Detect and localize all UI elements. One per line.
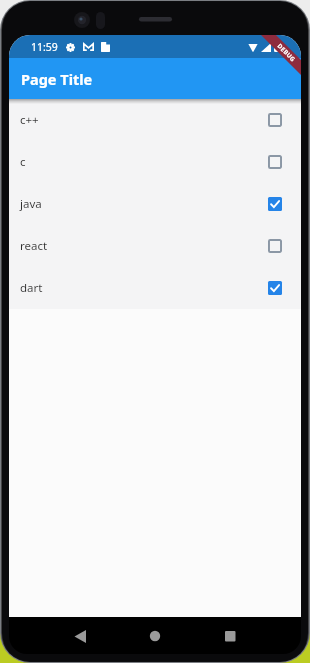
button[interactable]: Home [118, 617, 193, 645]
staticText: java [20, 196, 42, 212]
staticText: Page Title [21, 69, 93, 89]
staticText: 11:59 [31, 40, 58, 54]
staticText: react [20, 238, 48, 254]
button[interactable]: c++ [9, 99, 301, 141]
staticText: c++ [20, 112, 39, 128]
button[interactable]: react [9, 225, 301, 267]
staticText: dart [20, 280, 43, 296]
button[interactable]: Back [43, 617, 118, 645]
button[interactable]: java [9, 183, 301, 225]
button[interactable]: Recents [193, 617, 268, 645]
button[interactable]: c [9, 141, 301, 183]
staticText: c [20, 154, 26, 170]
button[interactable]: dart [9, 267, 301, 309]
